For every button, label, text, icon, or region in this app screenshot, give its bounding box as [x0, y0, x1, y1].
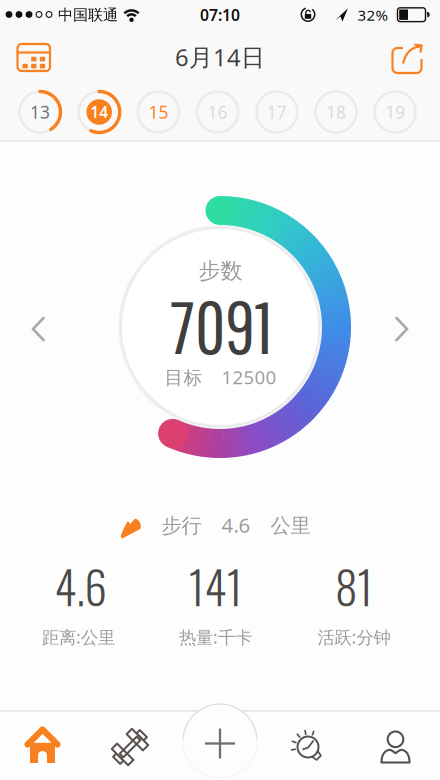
staticText: 15	[148, 100, 168, 124]
staticText: 6月14日	[175, 41, 265, 73]
staticText: 13	[30, 100, 50, 124]
staticText: 32%	[357, 5, 388, 25]
staticText: 距离:公里	[42, 625, 115, 649]
staticText: 中国联通	[58, 5, 118, 24]
staticText: 81	[335, 553, 373, 619]
staticText: 4.6	[54, 553, 106, 619]
staticText: 步行 4.6 公里	[161, 511, 310, 539]
staticText: 19	[385, 100, 405, 124]
staticText: 16	[208, 100, 228, 124]
staticText: 热量:千卡	[179, 625, 252, 649]
staticText: 14	[90, 101, 108, 123]
staticText: 18	[326, 100, 346, 124]
staticText: 步数	[198, 257, 242, 285]
staticText: 活跃:分钟	[317, 625, 390, 649]
staticText: 07:10	[200, 4, 240, 26]
staticText: 目标 12500	[164, 364, 276, 390]
staticText: 17	[267, 100, 287, 124]
staticText: 7091	[170, 283, 272, 369]
staticText: 141	[188, 553, 242, 619]
